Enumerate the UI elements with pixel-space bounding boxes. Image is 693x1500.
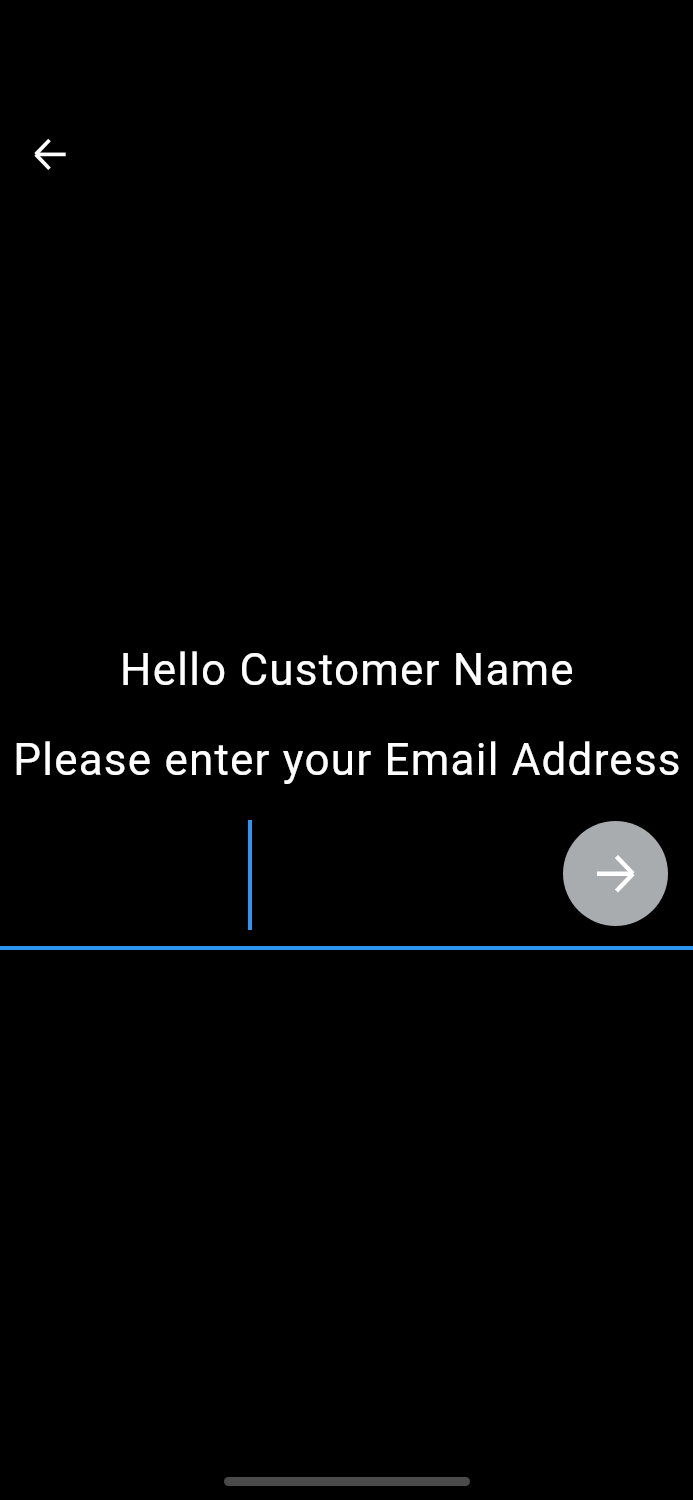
staticText: Hello Customer Name xyxy=(1,644,693,696)
button[interactable]: Next xyxy=(563,821,668,926)
staticText: Please enter your Email Address xyxy=(1,734,693,786)
button[interactable]: Back xyxy=(20,124,80,184)
